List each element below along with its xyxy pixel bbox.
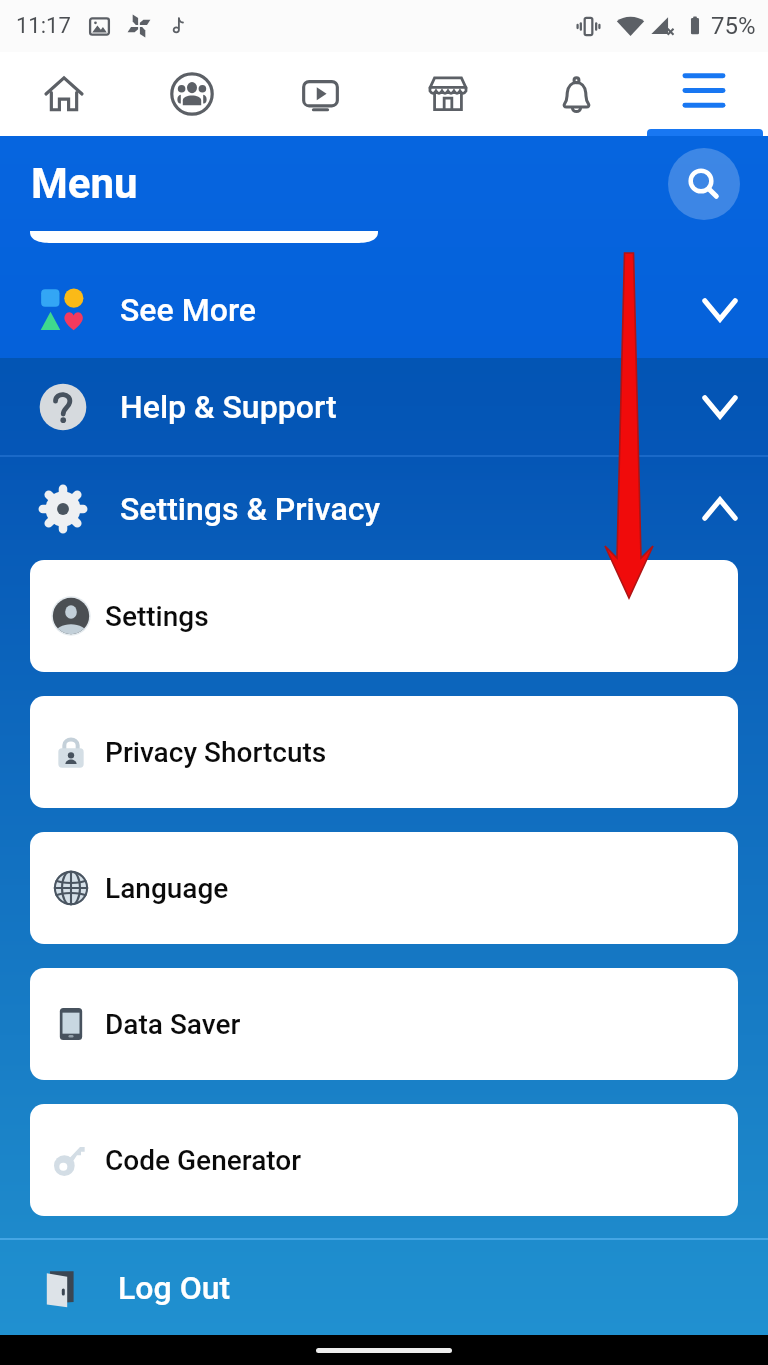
staticText: Language — [105, 872, 229, 905]
staticText: Log Out — [118, 1269, 231, 1307]
staticText: Privacy Shortcuts — [105, 736, 327, 769]
staticText: Code Generator — [105, 1144, 302, 1177]
button[interactable]: Notifications — [512, 52, 640, 136]
button[interactable]: Friends — [128, 52, 256, 136]
staticText: 11:17 — [16, 13, 71, 39]
button[interactable]: Marketplace — [384, 52, 512, 136]
button[interactable]: Language — [30, 832, 738, 944]
button[interactable]: Log Out — [0, 1240, 768, 1335]
staticText: Settings & Privacy — [120, 490, 381, 528]
button[interactable]: Settings & Privacy — [0, 457, 768, 560]
staticText: Help & Support — [120, 388, 337, 426]
button[interactable]: Settings — [30, 560, 738, 672]
button[interactable]: Menu — [640, 52, 768, 136]
button[interactable]: Data Saver — [30, 968, 738, 1080]
staticText: 75% — [711, 12, 756, 40]
button[interactable]: Privacy Shortcuts — [30, 696, 738, 808]
staticText: Menu — [31, 159, 138, 208]
button[interactable]: Code Generator — [30, 1104, 738, 1216]
button[interactable]: Watch — [256, 52, 384, 136]
button[interactable]: Search — [668, 148, 740, 220]
button[interactable]: Home — [0, 52, 128, 136]
staticText: Settings — [105, 600, 209, 633]
button[interactable]: See More — [0, 261, 768, 358]
staticText: Data Saver — [105, 1008, 241, 1041]
button[interactable]: Help & Support — [0, 358, 768, 455]
staticText: See More — [120, 291, 256, 329]
